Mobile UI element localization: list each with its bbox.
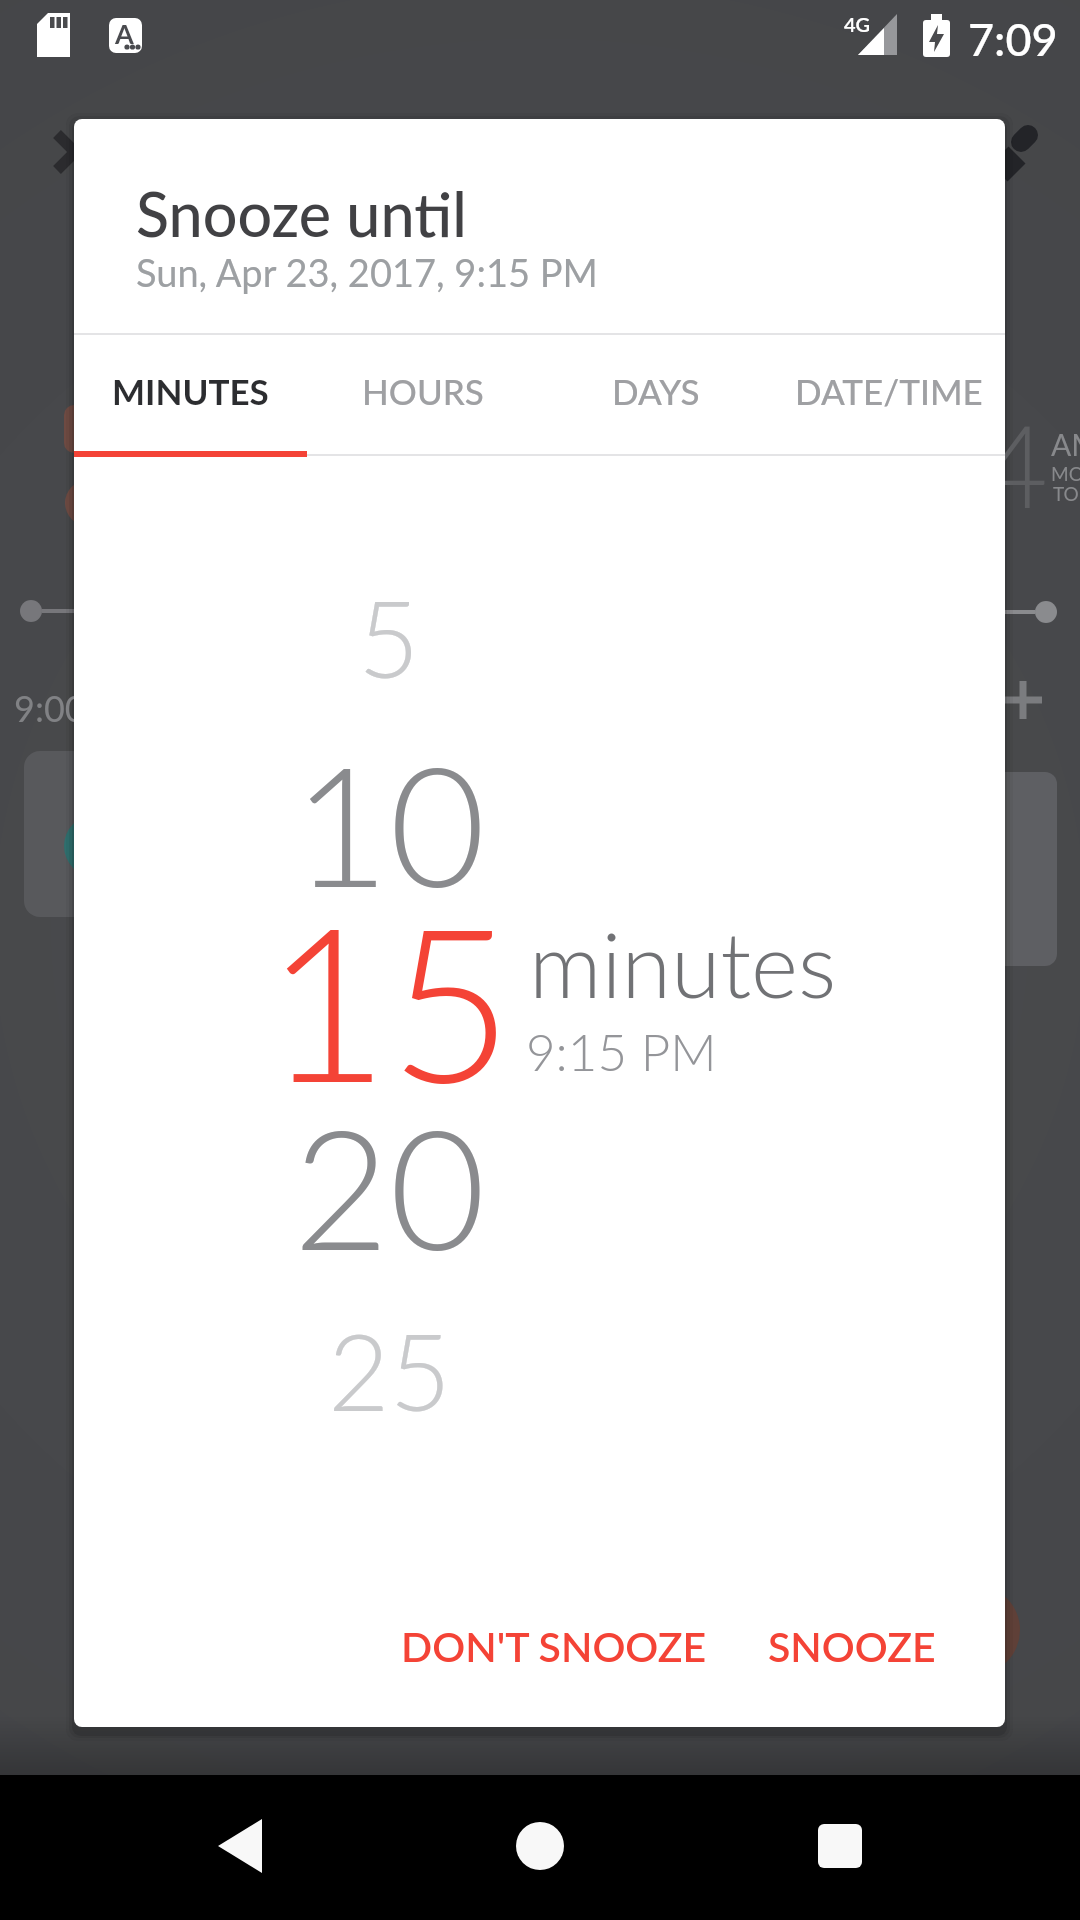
button[interactable]: 5 (89, 557, 689, 716)
staticText: Sun, Apr 23, 2017, 9:15 PM (136, 249, 598, 295)
staticText: SNOOZE (768, 1622, 936, 1671)
staticText: TOMORR (1053, 482, 1080, 505)
button[interactable] (480, 1795, 600, 1900)
button[interactable] (180, 1795, 300, 1900)
button[interactable]: 25 (89, 1290, 689, 1449)
staticText: 10 (293, 723, 486, 922)
staticText: 7:09 (968, 12, 1058, 66)
staticText: minutes (529, 909, 837, 1017)
staticText: 25 (328, 1306, 451, 1433)
staticText: DATE/TIME (795, 370, 983, 412)
button[interactable]: 20 (89, 1061, 689, 1310)
button[interactable]: MINUTES (74, 331, 306, 451)
button[interactable]: HOURS (306, 331, 539, 451)
button[interactable]: SNOOZE (747, 1601, 957, 1691)
button[interactable]: 10 (89, 698, 689, 947)
staticText: 5 (358, 573, 420, 700)
staticText: AM (1051, 426, 1080, 462)
staticText: 4G (844, 12, 871, 36)
staticText: 15 (265, 871, 514, 1128)
staticText: DAYS (612, 370, 700, 412)
staticText: MINUTES (112, 370, 269, 412)
staticText: 4 (982, 395, 1049, 532)
button[interactable] (780, 1795, 900, 1900)
button[interactable]: DAYS (539, 331, 772, 451)
staticText: MON TO (1051, 462, 1080, 485)
button[interactable]: DATE/TIME (772, 331, 1005, 451)
staticText: HOURS (362, 370, 484, 412)
staticText: 20 (293, 1086, 486, 1285)
button[interactable]: 15 (89, 839, 689, 1160)
staticText: A (115, 17, 134, 49)
staticText: DON'T SNOOZE (401, 1622, 707, 1671)
staticText: 9:00 (14, 686, 86, 729)
staticText: Snooze until (136, 177, 467, 250)
staticText: 9:15 PM (526, 1021, 717, 1082)
button[interactable]: DON'T SNOOZE (334, 1601, 774, 1691)
